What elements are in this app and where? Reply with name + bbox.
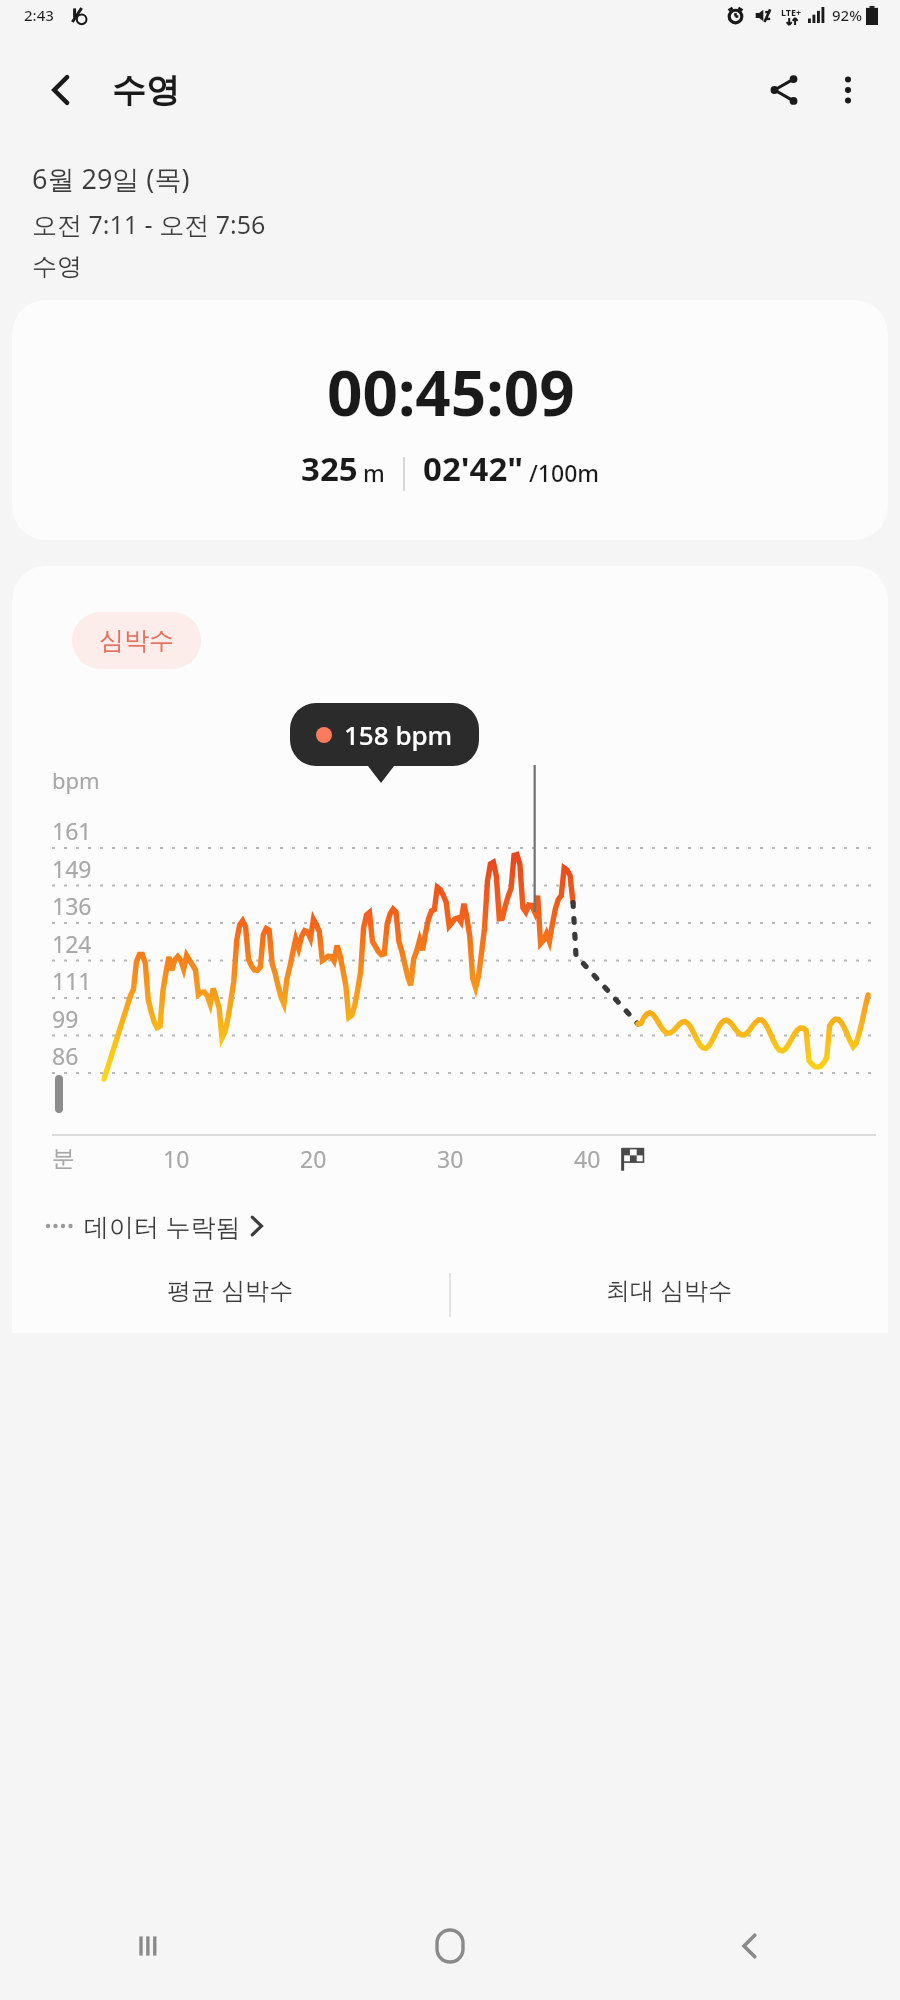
staticText: 분 bbox=[52, 1144, 75, 1173]
staticText: 161 bbox=[52, 815, 92, 846]
button[interactable]: Share bbox=[752, 58, 816, 122]
staticText: 수영 bbox=[32, 251, 82, 282]
button[interactable]: Home bbox=[300, 1892, 600, 2000]
staticText: 20 bbox=[300, 1143, 327, 1174]
button[interactable]: 데이터 누락됨 bbox=[42, 1203, 271, 1249]
staticText: 심박수 bbox=[99, 625, 174, 656]
staticText: 최대 심박수 bbox=[606, 1273, 733, 1306]
button[interactable]: Recent apps bbox=[0, 1892, 300, 2000]
staticText: /100m bbox=[529, 457, 600, 488]
button[interactable]: 00:45:09 bbox=[12, 300, 888, 540]
staticText: m bbox=[363, 457, 385, 488]
staticText: LTE+ bbox=[781, 6, 802, 18]
staticText: 99 bbox=[52, 1003, 79, 1034]
staticText: 325 bbox=[301, 446, 358, 491]
staticText: 오전 7:11 - 오전 7:56 bbox=[32, 207, 266, 241]
staticText: 136 bbox=[52, 890, 92, 921]
staticText: 6월 29일 (목) bbox=[32, 160, 190, 197]
staticText: 30 bbox=[437, 1143, 464, 1174]
button[interactable]: 심박수 bbox=[72, 612, 201, 669]
button[interactable]: Back bbox=[30, 59, 92, 121]
staticText: 149 bbox=[52, 853, 92, 884]
staticText: bpm bbox=[52, 765, 100, 795]
button[interactable]: More options bbox=[816, 58, 880, 122]
staticText: 86 bbox=[52, 1040, 79, 1071]
staticText: 111 bbox=[52, 965, 92, 996]
staticText: 00:45:09 bbox=[327, 350, 575, 434]
staticText: 데이터 누락됨 bbox=[84, 1209, 241, 1243]
staticText: 124 bbox=[52, 928, 92, 959]
staticText: 02'42" bbox=[423, 446, 524, 491]
staticText: 평균 심박수 bbox=[167, 1273, 294, 1306]
button[interactable]: Back bbox=[600, 1892, 900, 2000]
staticText: 92% bbox=[832, 5, 862, 25]
button[interactable]: 158 bpm bbox=[290, 703, 479, 766]
staticText: 158 bpm bbox=[344, 717, 453, 752]
staticText: 40 bbox=[574, 1143, 601, 1174]
staticText: 수영 bbox=[112, 69, 180, 112]
staticText: 2:43 bbox=[24, 5, 54, 25]
staticText: 10 bbox=[163, 1143, 190, 1174]
